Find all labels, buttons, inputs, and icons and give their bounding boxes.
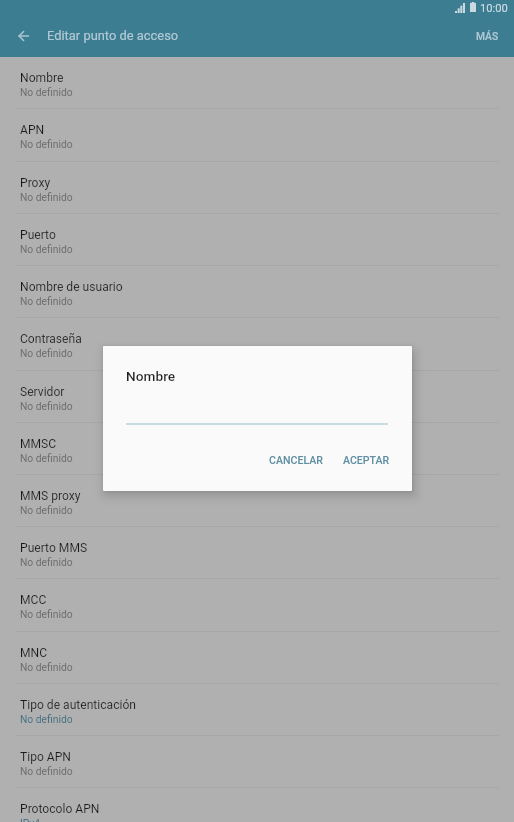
button[interactable]: Puerto bbox=[0, 213, 514, 265]
button[interactable]: Back bbox=[6, 19, 40, 53]
staticText: Tipo APN bbox=[20, 750, 71, 764]
staticText: Proxy bbox=[20, 176, 51, 190]
button[interactable]: Servidor bbox=[0, 370, 514, 422]
staticText: No definido bbox=[20, 661, 73, 673]
staticText: MCC bbox=[20, 593, 47, 607]
button[interactable]: MÁS bbox=[464, 21, 510, 57]
staticText: No definido bbox=[20, 713, 73, 725]
staticText: Protocolo APN bbox=[20, 802, 100, 816]
staticText: Puerto MMS bbox=[20, 541, 88, 555]
staticText: No definido bbox=[20, 452, 73, 464]
staticText: No definido bbox=[20, 608, 73, 620]
button[interactable]: ACEPTAR bbox=[339, 445, 394, 474]
staticText: MÁS bbox=[476, 30, 499, 42]
staticText: No definido bbox=[20, 400, 73, 412]
button[interactable]: Puerto MMS bbox=[0, 526, 514, 578]
button[interactable]: Tipo de autenticación bbox=[0, 683, 514, 735]
staticText: No definido bbox=[20, 86, 73, 98]
staticText: No definido bbox=[20, 504, 73, 516]
staticText: MMS proxy bbox=[20, 489, 81, 503]
staticText: MMSC bbox=[20, 437, 57, 451]
button[interactable]: Tipo APN bbox=[0, 735, 514, 787]
staticText: No definido bbox=[20, 138, 73, 150]
staticText: No definido bbox=[20, 243, 73, 255]
staticText: Contraseña bbox=[20, 332, 82, 346]
staticText: Nombre bbox=[126, 368, 176, 384]
button[interactable]: MCC bbox=[0, 578, 514, 630]
button[interactable]: MNC bbox=[0, 631, 514, 683]
staticText: Tipo de autenticación bbox=[20, 698, 137, 712]
staticText: No definido bbox=[20, 556, 73, 568]
staticText: Nombre bbox=[20, 71, 64, 85]
staticText: APN bbox=[20, 123, 45, 137]
button[interactable]: Proxy bbox=[0, 161, 514, 213]
button[interactable]: Nombre bbox=[0, 56, 514, 108]
staticText: IPv4 bbox=[20, 817, 41, 822]
button[interactable]: MMSC bbox=[0, 422, 514, 474]
button[interactable]: Nombre de usuario bbox=[0, 265, 514, 317]
button[interactable]: MMS proxy bbox=[0, 474, 514, 526]
button[interactable]: Contraseña bbox=[0, 317, 514, 369]
staticText: No definido bbox=[20, 191, 73, 203]
staticText: No definido bbox=[20, 765, 73, 777]
staticText: Servidor bbox=[20, 385, 65, 399]
button[interactable]: APN bbox=[0, 108, 514, 160]
staticText: MNC bbox=[20, 646, 48, 660]
staticText: Editar punto de acceso bbox=[47, 28, 179, 43]
button[interactable]: CANCELAR bbox=[265, 445, 327, 474]
staticText: 10:00 bbox=[480, 2, 508, 15]
staticText: ACEPTAR bbox=[343, 454, 390, 466]
staticText: Puerto bbox=[20, 228, 56, 242]
staticText: No definido bbox=[20, 295, 73, 307]
staticText: Nombre de usuario bbox=[20, 280, 123, 294]
staticText: CANCELAR bbox=[269, 454, 323, 466]
staticText: No definido bbox=[20, 347, 73, 359]
button[interactable]: Protocolo APN bbox=[0, 787, 514, 822]
